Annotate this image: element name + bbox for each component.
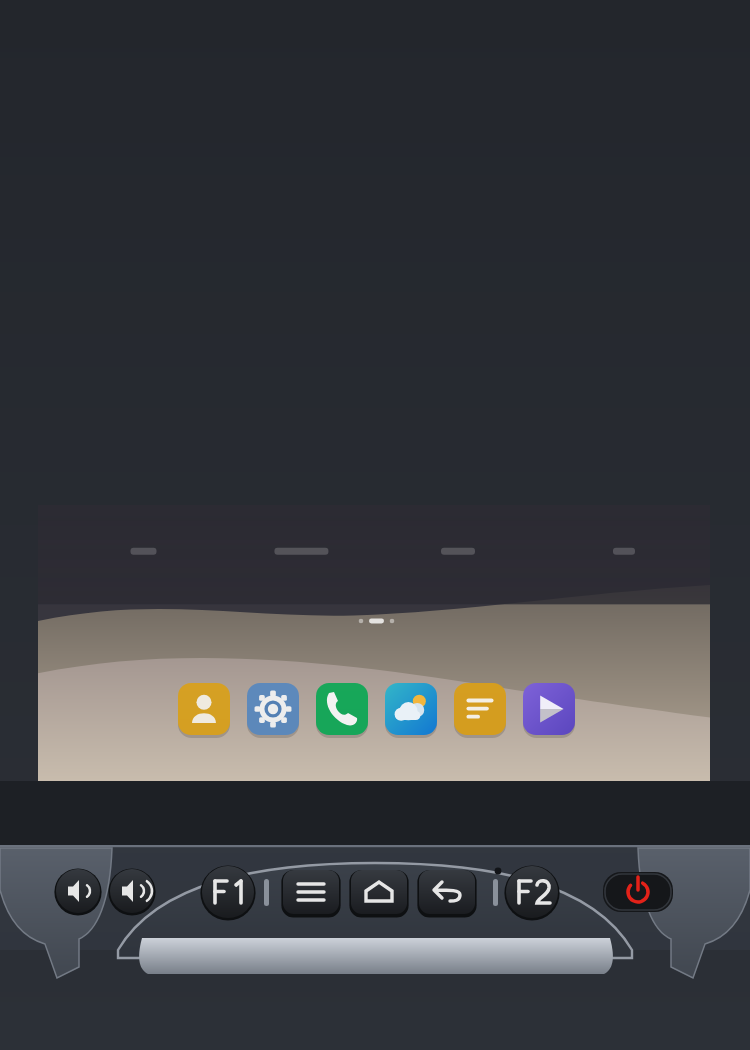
button[interactable]: Menu — [283, 870, 339, 914]
button[interactable]: Home — [351, 870, 407, 914]
button[interactable]: Settings — [247, 683, 299, 735]
button[interactable]: Weather — [385, 683, 437, 735]
button[interactable]: Power — [603, 872, 673, 912]
button[interactable]: F2 — [507, 867, 557, 917]
button[interactable]: Volume down — [56, 869, 100, 913]
button[interactable]: Back — [419, 870, 475, 914]
button[interactable]: Notes — [454, 683, 506, 735]
button[interactable]: F1 — [203, 867, 253, 917]
button[interactable]: Phone — [316, 683, 368, 735]
button[interactable]: Player — [523, 683, 575, 735]
button[interactable]: Volume up — [110, 869, 154, 913]
button[interactable]: Contacts — [178, 683, 230, 735]
